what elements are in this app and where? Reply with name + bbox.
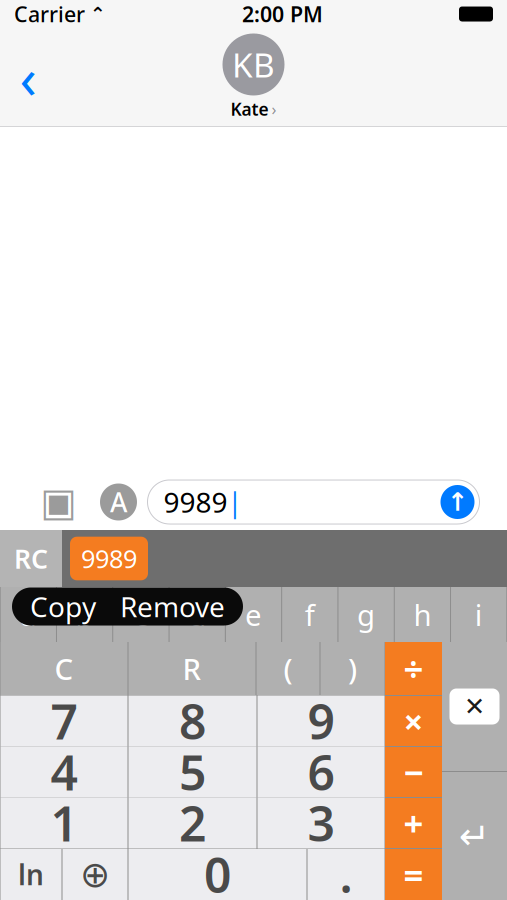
staticText: i [475,595,483,634]
staticText: KB [232,42,275,87]
button[interactable]: 1 [0,797,127,848]
staticText: 5 [179,740,206,804]
staticText: Remove [120,588,225,625]
button[interactable]: Delete [442,642,507,771]
button[interactable]: C [0,642,127,695]
staticText: 1 [50,791,77,855]
button[interactable]: f [282,587,337,642]
staticText: b [76,595,94,634]
button[interactable]: ln [0,849,61,900]
button[interactable]: 5 [128,746,256,797]
staticText: ⊕ [80,854,110,895]
button[interactable]: i [451,587,506,642]
staticText: RC [14,541,48,576]
staticText: a [20,595,36,634]
button[interactable]: ( [256,642,319,695]
staticText: × [403,698,423,744]
button[interactable]: 0 [128,849,306,900]
button[interactable]: g [338,587,394,642]
staticText: ↵ [459,815,490,857]
button[interactable]: c [113,587,168,642]
staticText: ⌃ [90,3,106,25]
staticText: h [413,595,431,634]
staticText: + [403,800,423,846]
button[interactable]: + [385,798,442,848]
staticText: ÷ [403,645,423,691]
button[interactable]: d [169,587,225,642]
staticText: ) [348,649,357,688]
staticText: f [305,595,315,634]
staticText: ( [283,649,292,688]
staticText: 4 [50,740,77,804]
staticText: 6 [307,740,334,804]
button[interactable]: × [385,696,442,746]
button[interactable]: b [57,587,112,642]
button[interactable]: a [1,587,56,642]
staticText: 0 [204,843,231,900]
staticText: ↑ [447,488,468,516]
staticText: 9989 [163,483,227,521]
button[interactable]: 2 [128,797,256,848]
staticText: C [54,649,73,688]
button[interactable]: e [226,587,281,642]
button[interactable]: h [395,587,450,642]
button[interactable]: ÷ [385,642,442,695]
button[interactable]: − [385,747,442,797]
button[interactable]: ) [320,642,384,695]
staticText: Carrier [14,0,85,28]
staticText: R [182,649,201,688]
button[interactable]: 9989 [70,537,148,580]
staticText: g [357,595,375,634]
staticText: d [188,595,206,634]
button[interactable]: Remove [120,588,225,625]
button[interactable]: Next keyboard [62,849,127,900]
button[interactable]: Copy [30,588,96,625]
staticText: 2:00 PM [242,0,323,28]
staticText: A [110,484,127,520]
staticText: 8 [179,689,206,753]
staticText: . [339,843,352,900]
button[interactable]: 7 [0,695,127,746]
button[interactable]: RC [0,530,62,587]
button[interactable]: Back [0,42,56,112]
button[interactable]: . [307,849,384,900]
button[interactable]: KB [222,33,284,120]
staticText: 2 [179,791,206,855]
staticText: e [245,595,262,634]
button[interactable]: = [385,849,442,900]
staticText: = [403,851,423,897]
button[interactable]: Return [442,772,507,900]
staticText: 9989 [81,542,137,575]
staticText: | [227,484,242,520]
staticText: ▣ [40,480,77,524]
button[interactable]: R [128,642,255,695]
button[interactable]: 4 [0,746,127,797]
button[interactable]: App Store [89,478,147,526]
button[interactable]: 9 [257,695,384,746]
button[interactable]: 6 [257,746,384,797]
staticText: − [403,749,423,795]
button[interactable]: 3 [257,797,384,848]
staticText: Copy [30,588,96,625]
staticText: ✕ [464,692,485,721]
staticText: 7 [50,689,77,753]
staticText: › [271,98,276,120]
button[interactable]: Camera [27,478,89,526]
staticText: Kate [230,97,268,120]
staticText: ln [18,856,44,893]
button[interactable]: 9989 [147,480,479,524]
staticText: ‹ [19,40,36,114]
staticText: 9 [307,689,334,753]
staticText: 3 [307,791,334,855]
button[interactable]: 8 [128,695,256,746]
staticText: c [134,595,148,634]
